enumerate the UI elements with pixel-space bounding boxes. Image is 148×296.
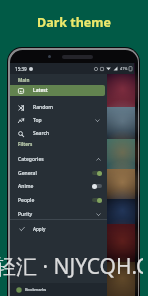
staticText: Categories: [18, 156, 44, 163]
staticText: 轻汇 · NJYCQH.C: [0, 252, 143, 281]
staticText: Bookmarks: [25, 287, 47, 292]
button[interactable]: Expand: [95, 211, 102, 218]
button[interactable]: Top: [10, 114, 105, 127]
staticText: 41%: [120, 66, 128, 71]
button[interactable]: Collapse: [95, 156, 102, 163]
button[interactable]: Anime: [10, 179, 107, 193]
staticText: Main: [18, 77, 30, 83]
staticText: Purity: [18, 211, 33, 218]
button[interactable]: On: [92, 197, 102, 203]
button[interactable]: On: [92, 170, 102, 176]
button[interactable]: Apply: [10, 221, 107, 236]
staticText: Search: [33, 130, 50, 137]
button[interactable]: People: [10, 193, 107, 207]
staticText: Anime: [18, 183, 34, 190]
staticText: Dark theme: [37, 14, 111, 31]
button[interactable]: Off: [92, 183, 102, 189]
staticText: People: [18, 197, 35, 204]
staticText: Top: [33, 117, 42, 124]
button[interactable]: Random: [10, 101, 105, 114]
button[interactable]: General: [10, 166, 107, 180]
button[interactable]: Purity: [10, 207, 107, 221]
staticText: Latest: [33, 87, 48, 94]
staticText: General: [18, 170, 37, 177]
button[interactable]: Latest: [10, 85, 105, 96]
staticText: 15:39: [15, 66, 27, 72]
button[interactable]: Categories: [10, 152, 107, 166]
staticText: Random: [33, 104, 54, 111]
button[interactable]: Expand: [94, 117, 101, 124]
button[interactable]: Bookmarks: [16, 283, 47, 296]
staticText: Filters: [18, 141, 33, 147]
button[interactable]: Search: [10, 127, 105, 140]
staticText: Apply: [33, 226, 46, 232]
